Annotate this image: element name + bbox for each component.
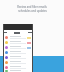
button[interactable]: Menu [3, 30, 33, 35]
button[interactable] [3, 70, 33, 72]
button[interactable] [3, 50, 33, 55]
button[interactable] [3, 55, 33, 60]
staticText: Review and filter emails [17, 5, 47, 9]
button[interactable] [3, 40, 33, 45]
button[interactable] [3, 35, 33, 40]
staticText: schedules and updates [18, 9, 47, 13]
other: Menu [4, 31, 7, 34]
button[interactable] [3, 60, 33, 65]
button[interactable] [3, 45, 33, 50]
button[interactable] [3, 65, 33, 70]
